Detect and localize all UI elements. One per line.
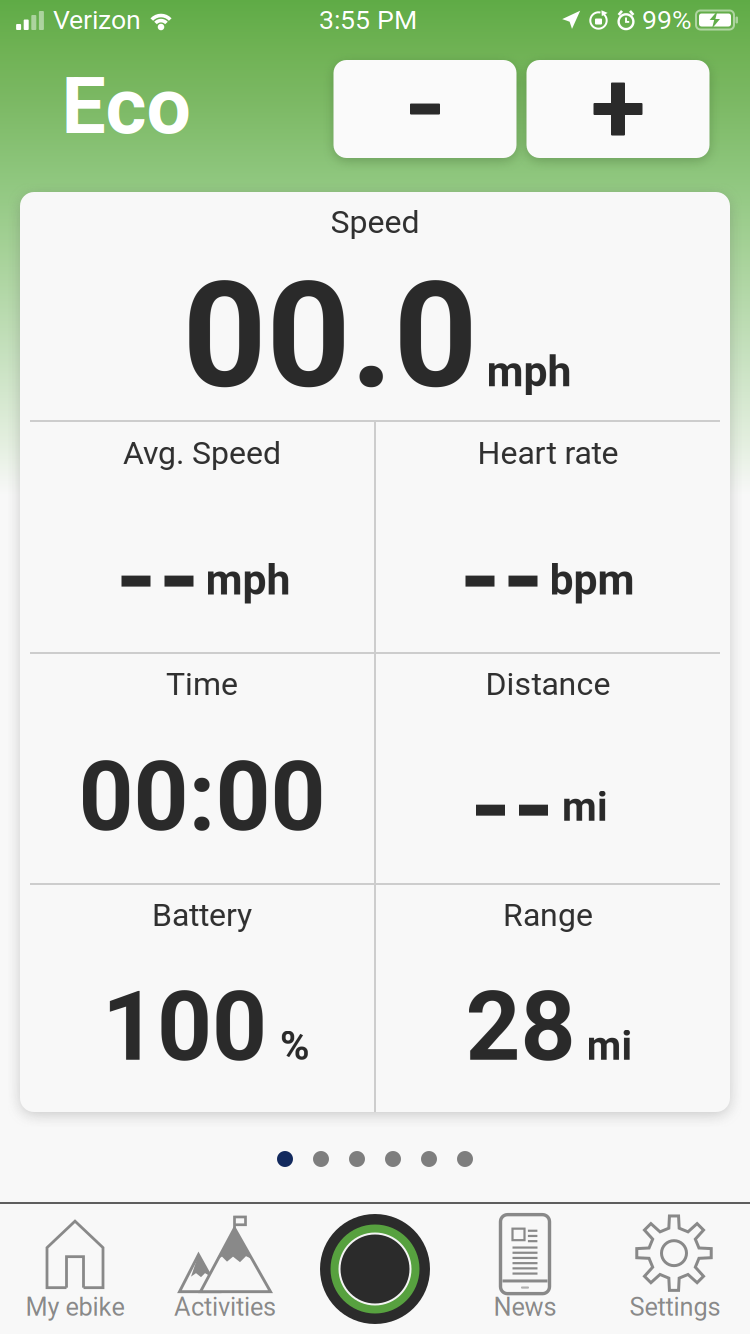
staticText: Time (166, 665, 238, 703)
staticText: Battery (152, 896, 252, 934)
button[interactable]: Ride (300, 1204, 450, 1334)
staticText: Activities (174, 1292, 276, 1322)
staticText: Verizon (53, 4, 141, 36)
button[interactable]: Increase assist level (526, 60, 709, 158)
staticText: Range (503, 896, 593, 934)
staticText: Avg. Speed (123, 434, 281, 472)
staticText: 99% (642, 4, 692, 36)
staticText: mph (486, 346, 571, 396)
staticText: % (280, 1023, 310, 1070)
staticText: My ebike (25, 1292, 124, 1322)
staticText: mi (562, 784, 608, 830)
button[interactable]: My ebike (0, 1203, 150, 1334)
staticText: 28 (465, 971, 575, 1083)
staticText: 3:55 PM (319, 4, 417, 36)
staticText: Speed (330, 203, 419, 241)
staticText: 100 (102, 971, 267, 1083)
staticText: Distance (485, 665, 610, 703)
staticText: Eco (61, 60, 190, 152)
staticText: 00:00 (78, 741, 325, 853)
staticText: Heart rate (477, 434, 618, 472)
staticText: bpm (549, 555, 634, 605)
button[interactable]: News (450, 1203, 600, 1334)
button[interactable]: Activities (150, 1203, 300, 1334)
button[interactable]: Start ride (320, 1214, 430, 1324)
button[interactable]: Settings (600, 1203, 750, 1334)
staticText: News (493, 1292, 556, 1322)
staticText: Settings (629, 1292, 720, 1322)
staticText: mph (205, 555, 290, 605)
staticText: 00.0 (182, 250, 477, 422)
staticText: mi (586, 1023, 632, 1070)
button[interactable]: Decrease assist level (333, 60, 516, 158)
